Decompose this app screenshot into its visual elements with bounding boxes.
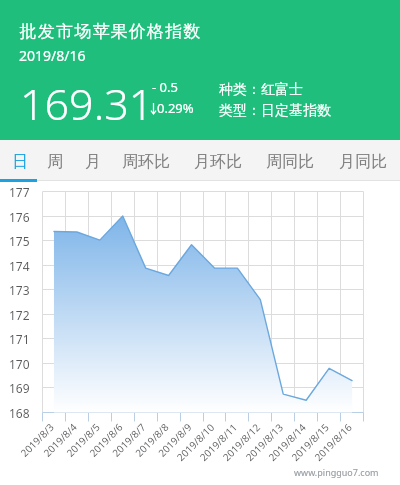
button[interactable]: 日	[0, 140, 50, 181]
staticText: 2019/8/16	[19, 46, 86, 65]
button[interactable]: 月同比	[339, 140, 389, 181]
staticText: 周同比	[266, 152, 314, 172]
staticText: 169.31	[20, 74, 154, 133]
staticText: 周	[47, 152, 63, 172]
staticText: 种类：红富士	[219, 81, 303, 99]
staticText: 月环比	[194, 152, 242, 172]
button[interactable]: 月环比	[194, 140, 244, 181]
button[interactable]: 周同比	[266, 140, 316, 181]
staticText: - 0.5	[152, 78, 178, 96]
staticText: 0.29%	[157, 99, 194, 117]
staticText: 日	[12, 152, 28, 172]
button[interactable]: 月	[85, 140, 115, 181]
staticText: 批发市场苹果价格指数	[19, 21, 201, 42]
button[interactable]: 周	[47, 140, 77, 181]
staticText: 月同比	[339, 152, 387, 172]
staticText: 周环比	[122, 152, 170, 172]
button[interactable]: 周环比	[122, 140, 172, 181]
staticText: 类型：日定基指数	[219, 102, 331, 120]
staticText: 月	[85, 152, 101, 172]
